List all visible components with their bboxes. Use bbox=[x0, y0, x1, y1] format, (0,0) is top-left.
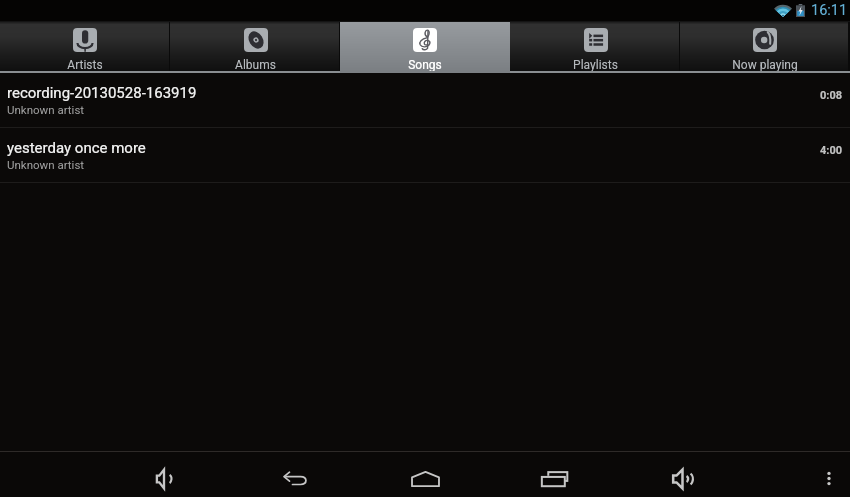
staticText: Albums bbox=[235, 58, 276, 71]
button[interactable]: Home bbox=[401, 452, 449, 497]
staticText: Artists bbox=[67, 58, 103, 71]
button[interactable]: Now playing bbox=[680, 21, 850, 71]
staticText: Now playing bbox=[732, 58, 798, 71]
button[interactable]: Volume down bbox=[140, 452, 188, 497]
staticText: Unknown artist bbox=[7, 103, 85, 116]
button[interactable]: yesterday once more bbox=[0, 128, 850, 182]
button[interactable]: More options bbox=[805, 452, 850, 497]
button[interactable]: Artists bbox=[0, 21, 170, 71]
button[interactable]: Back bbox=[271, 452, 319, 497]
staticText: Songs bbox=[408, 58, 442, 71]
staticText: Unknown artist bbox=[7, 158, 85, 171]
button[interactable]: Volume up bbox=[658, 452, 706, 497]
button[interactable]: recording-20130528-163919 bbox=[0, 73, 850, 127]
button[interactable]: Songs bbox=[340, 21, 510, 71]
staticText: Playlists bbox=[573, 58, 618, 71]
button[interactable]: Playlists bbox=[510, 21, 680, 71]
staticText: 4:00 bbox=[820, 144, 843, 157]
button[interactable]: Recent apps bbox=[531, 452, 579, 497]
staticText: 16:11 bbox=[811, 2, 848, 19]
staticText: recording-20130528-163919 bbox=[7, 84, 197, 102]
button[interactable]: Albums bbox=[170, 21, 340, 71]
staticText: yesterday once more bbox=[7, 139, 146, 157]
staticText: 0:08 bbox=[820, 89, 843, 102]
